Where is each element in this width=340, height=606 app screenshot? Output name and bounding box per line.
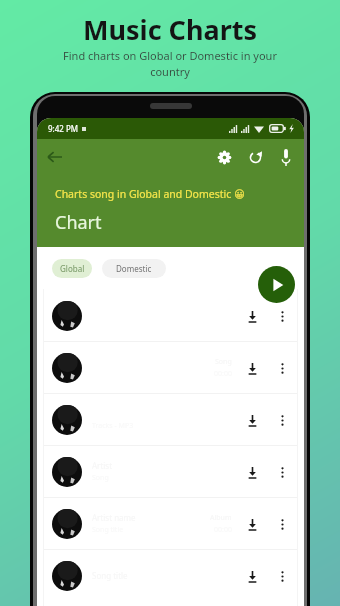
button[interactable]: Domestic — [102, 259, 166, 278]
button[interactable]: Refresh — [244, 146, 266, 168]
button[interactable]: Download — [242, 514, 262, 534]
button[interactable]: Tracks - MP3 — [37, 394, 304, 445]
staticText: Chart — [55, 210, 102, 235]
button[interactable]: More options — [272, 462, 292, 482]
button[interactable]: Download — [242, 462, 262, 482]
button[interactable]: Play — [258, 266, 295, 303]
button[interactable]: Settings — [213, 146, 235, 168]
staticText: 9:42 PM — [48, 123, 79, 134]
button[interactable]: Download — [242, 306, 262, 326]
button[interactable]: More options — [272, 410, 292, 430]
button[interactable]: More options — [272, 306, 292, 326]
button[interactable]: Download — [242, 566, 262, 586]
button[interactable]: Download — [242, 358, 262, 378]
button[interactable]: More options — [272, 566, 292, 586]
staticText: Music Charts — [83, 11, 257, 48]
button[interactable]: Artist name — [37, 498, 304, 549]
button[interactable]: Back — [44, 146, 66, 168]
staticText: Domestic — [116, 263, 152, 274]
button[interactable]: Voice search — [275, 146, 297, 168]
staticText: Global — [60, 263, 85, 274]
staticText: Charts song in Global and Domestic 😀 — [55, 187, 245, 201]
button[interactable]: Download — [242, 410, 262, 430]
button[interactable]: Download — [37, 290, 304, 341]
button[interactable]: Song — [37, 342, 304, 393]
button[interactable]: More options — [272, 358, 292, 378]
button[interactable]: Artist — [37, 446, 304, 497]
staticText: Find charts on Global or Domestic in you… — [57, 48, 283, 80]
button[interactable]: More options — [272, 514, 292, 534]
button[interactable]: Song title — [37, 550, 304, 601]
button[interactable]: Global — [52, 259, 92, 278]
